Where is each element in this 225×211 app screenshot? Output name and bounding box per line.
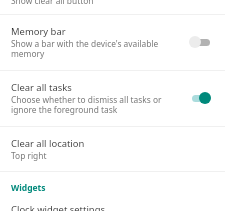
staticText: Memory bar — [11, 25, 66, 38]
staticText: Widgets — [11, 182, 46, 194]
staticText: Clock widget settings — [11, 203, 106, 211]
button[interactable]: Clear all location — [0, 127, 225, 171]
staticText: Show clear all button — [11, 0, 94, 6]
button[interactable]: Clock widget settings — [0, 194, 225, 211]
staticText: Clear all location — [11, 137, 85, 150]
button[interactable]: Memory bar switch, off — [189, 36, 211, 48]
button[interactable]: Clear all tasks — [0, 71, 225, 126]
staticText: Choose whether to dismiss all tasks or i… — [11, 94, 167, 115]
staticText: Clear all tasks — [11, 81, 72, 94]
staticText: Show a bar with the device's available m… — [11, 38, 167, 59]
button[interactable]: Memory bar — [0, 15, 225, 70]
staticText: Top right — [11, 150, 47, 161]
button[interactable]: Clear all tasks switch, on — [189, 92, 211, 104]
